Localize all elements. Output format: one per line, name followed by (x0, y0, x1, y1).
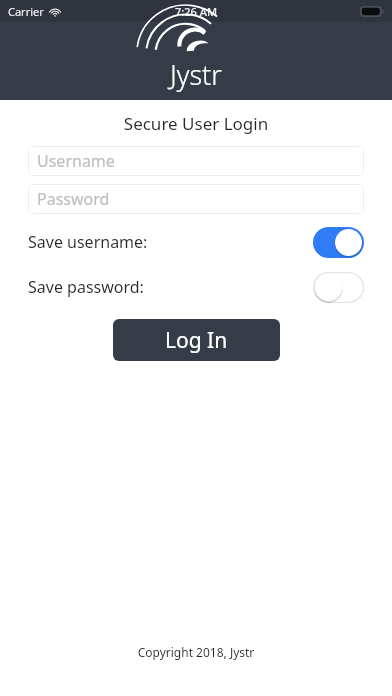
staticText: Carrier (8, 4, 44, 19)
staticText: Copyright 2018, Jystr (0, 644, 392, 660)
staticText: Jystr (170, 56, 222, 93)
button[interactable]: On (313, 227, 364, 258)
staticText: Username (37, 150, 115, 172)
staticText: Log In (165, 326, 228, 355)
staticText: Password (37, 188, 110, 210)
button[interactable]: Save password: (0, 269, 392, 305)
staticText: Save username: (28, 231, 148, 253)
button[interactable]: Username (28, 146, 364, 176)
button[interactable]: Log In (113, 319, 280, 361)
staticText: Secure User Login (0, 112, 392, 135)
staticText: Save password: (28, 276, 144, 298)
button[interactable]: Save username: (0, 224, 392, 260)
staticText: 7:26 AM (175, 4, 218, 19)
button[interactable]: Password (28, 184, 364, 214)
button[interactable]: Off (313, 272, 364, 303)
